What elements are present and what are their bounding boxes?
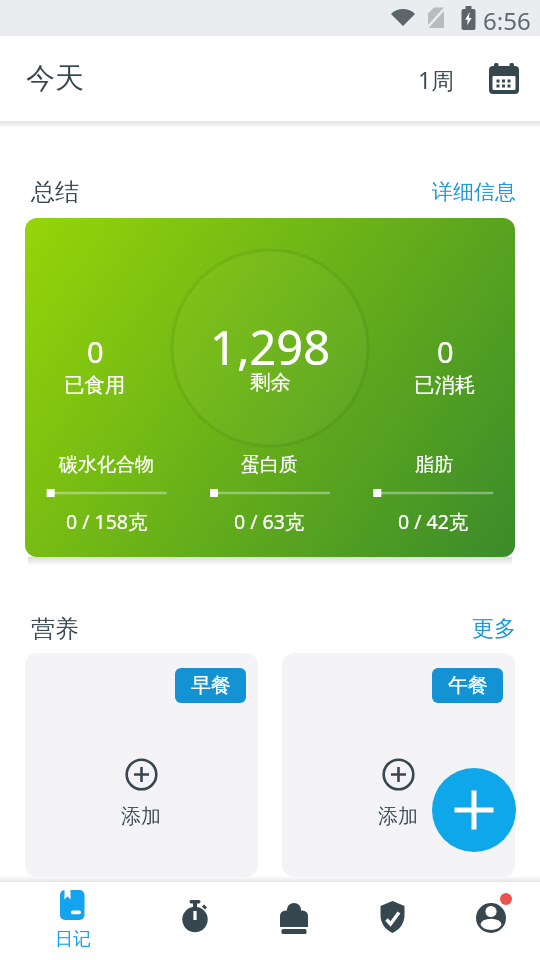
button[interactable]: [343, 882, 442, 960]
button[interactable]: [442, 882, 540, 960]
button[interactable]: 详细信息: [432, 179, 516, 205]
staticText: 早餐: [191, 673, 231, 698]
button[interactable]: [244, 882, 343, 960]
staticText: 0 / 63克: [234, 508, 305, 535]
staticText: 0 / 158克: [66, 508, 148, 535]
staticText: 营养: [31, 614, 79, 644]
staticText: 已食用: [64, 372, 126, 398]
button[interactable]: 添加: [338, 758, 458, 830]
staticText: 蛋白质: [241, 453, 298, 477]
staticText: 0: [437, 332, 454, 368]
staticText: 总结: [31, 177, 79, 207]
staticText: 详细信息: [432, 179, 516, 205]
staticText: 6:56: [483, 4, 531, 32]
button[interactable]: 更多: [472, 615, 516, 643]
staticText: 添加: [378, 804, 418, 829]
staticText: 1周: [418, 64, 455, 95]
staticText: 更多: [472, 615, 516, 643]
button[interactable]: 早餐: [25, 653, 258, 877]
staticText: 午餐: [448, 673, 488, 698]
staticText: 脂肪: [415, 453, 453, 477]
button[interactable]: [145, 882, 244, 960]
staticText: 碳水化合物: [59, 453, 154, 477]
staticText: 今天: [26, 60, 84, 97]
button[interactable]: 1周: [418, 64, 455, 95]
button[interactable]: 午餐: [282, 653, 515, 877]
staticText: 1,298: [210, 315, 331, 371]
staticText: 已消耗: [414, 372, 476, 398]
staticText: 剩余: [250, 369, 291, 395]
button[interactable]: 日记: [0, 882, 145, 960]
button[interactable]: 添加: [81, 758, 201, 830]
staticText: 0 / 42克: [398, 508, 469, 535]
button[interactable]: [432, 768, 516, 852]
staticText: 添加: [121, 804, 161, 829]
staticText: 0: [87, 332, 104, 368]
button[interactable]: [488, 63, 520, 95]
staticText: 日记: [55, 928, 91, 948]
